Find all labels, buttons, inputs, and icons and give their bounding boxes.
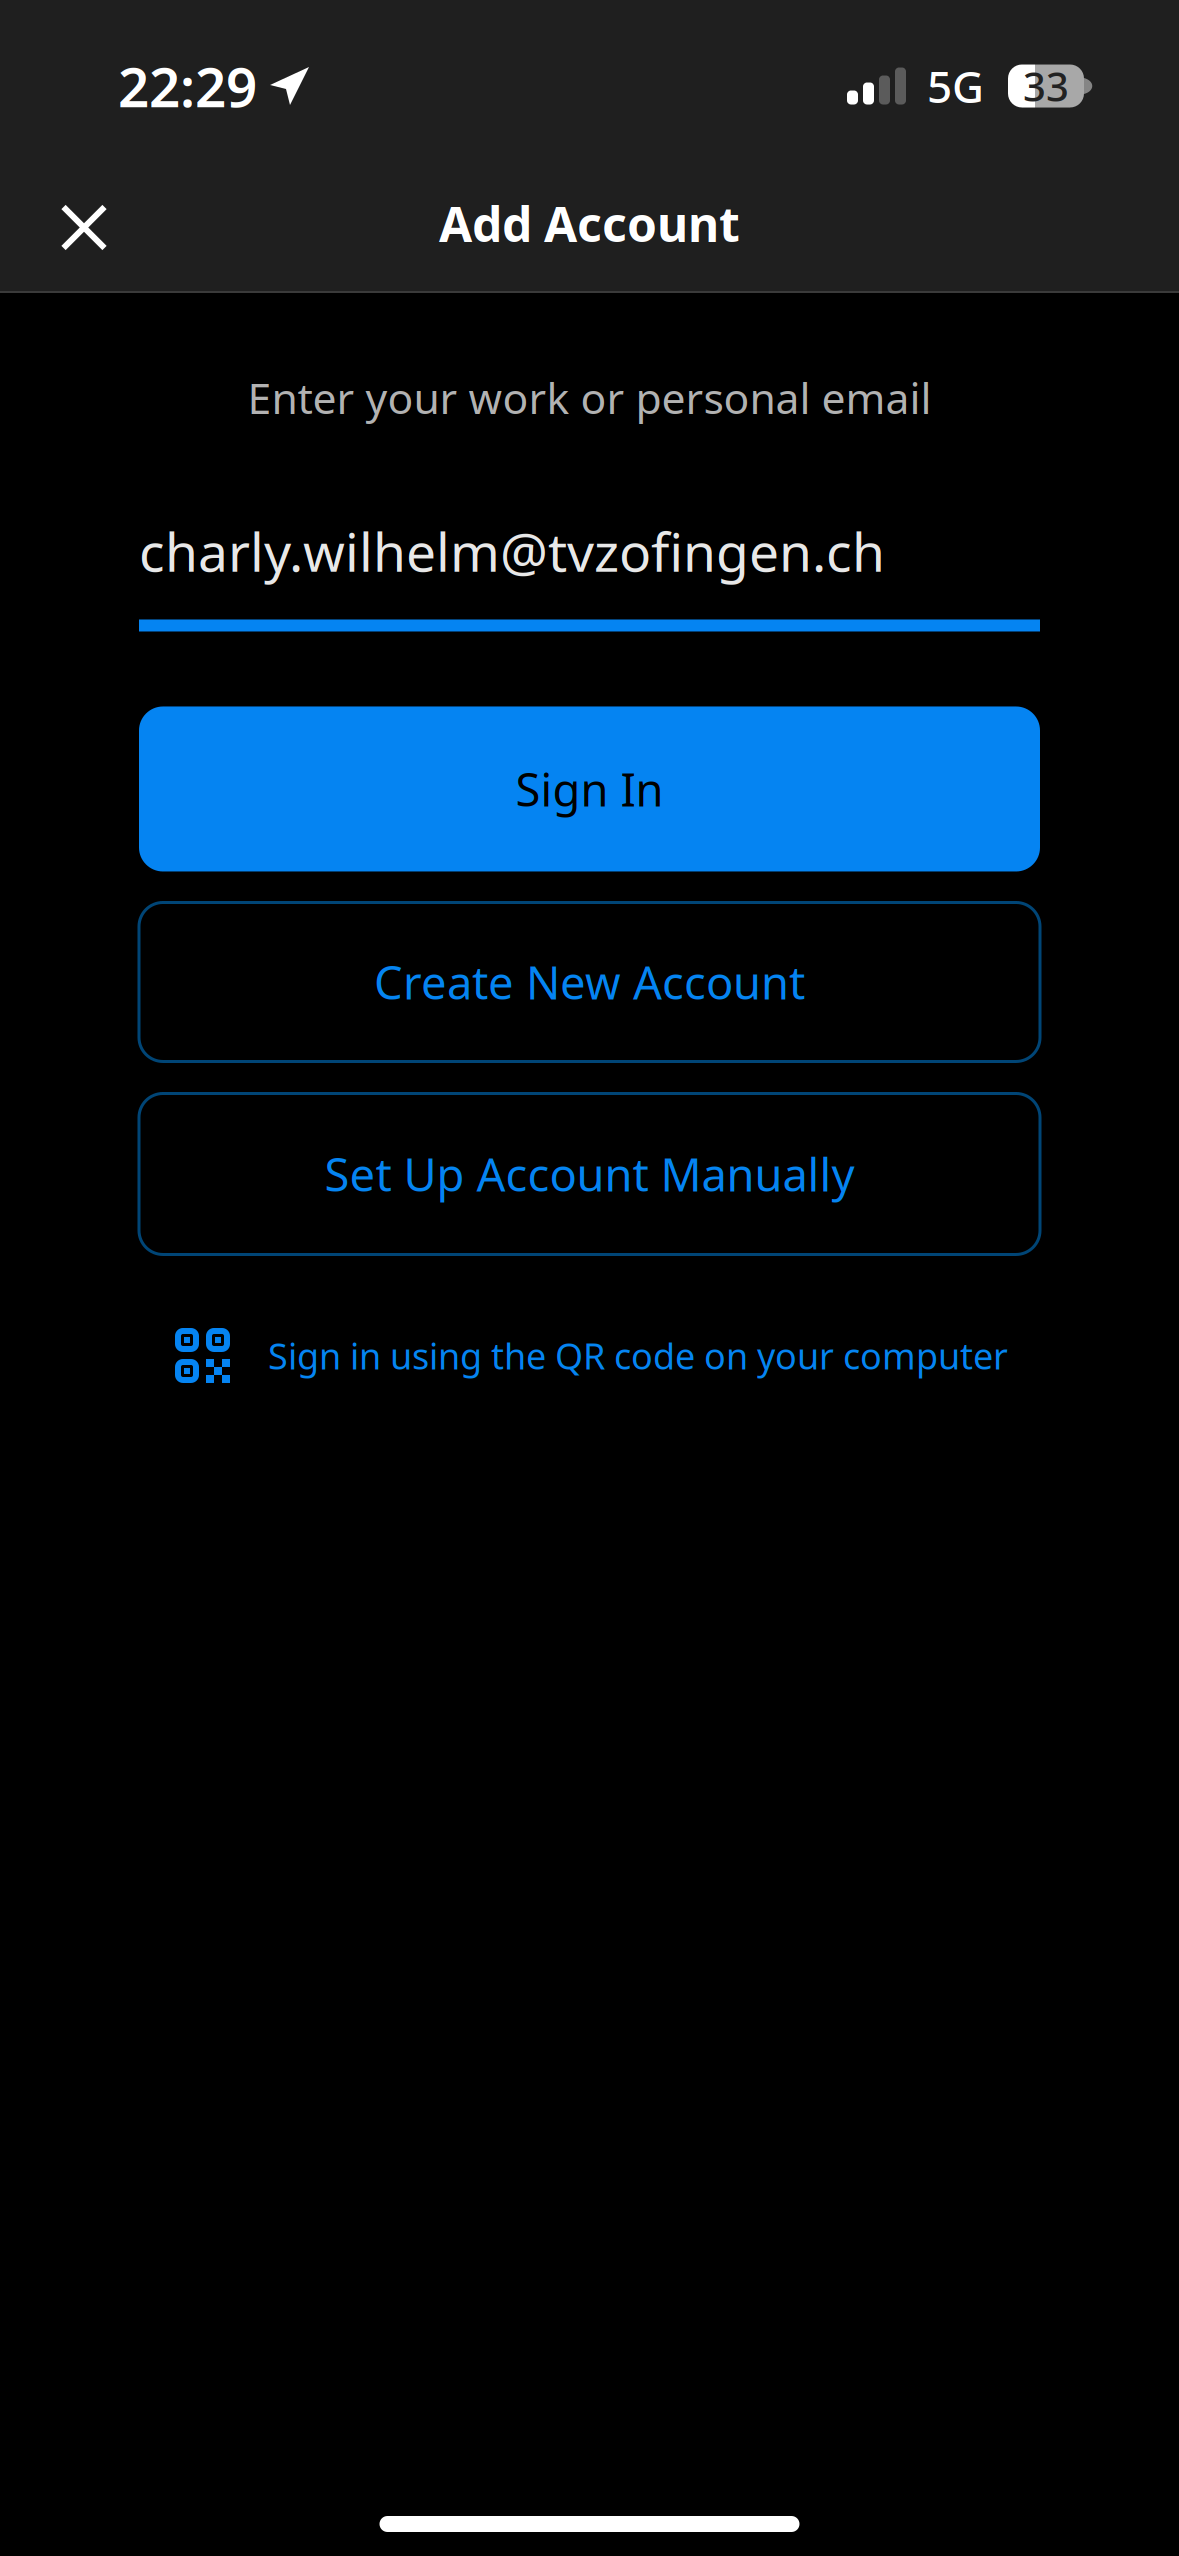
staticText: Add Account [439,192,740,255]
button[interactable]: Close [38,181,130,273]
button[interactable]: Set Up Account Manually [139,1093,1040,1254]
staticText: Sign in using the QR code on your comput… [268,1332,1008,1379]
staticText: 5G [927,57,984,115]
staticText: Set Up Account Manually [324,1144,854,1204]
button[interactable]: Sign In [139,706,1040,871]
button[interactable]: Sign in using the QR code on your comput… [139,1317,1040,1393]
staticText: Sign In [515,759,663,819]
staticText: Enter your work or personal email [247,369,931,426]
button[interactable]: Create New Account [139,902,1040,1061]
staticText: 33 [1023,59,1069,112]
staticText: charly.wilhelm@tvzofingen.ch [139,516,885,586]
staticText: Create New Account [374,952,805,1012]
staticText: 22:29 [118,50,257,122]
